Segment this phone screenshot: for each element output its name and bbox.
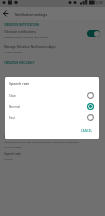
staticText: Slow (9, 94, 16, 98)
button[interactable]: Vibration notifications toggle (87, 30, 100, 37)
staticText: Vibration notifications (4, 30, 36, 34)
staticText: Speech rate (9, 81, 30, 86)
staticText: Normal (9, 105, 20, 109)
staticText: Conditional Voice Notifications (4, 135, 49, 139)
button[interactable]: Fast (5, 112, 99, 123)
staticText: Speech rate (4, 152, 22, 156)
button[interactable]: CANCEL (74, 127, 99, 135)
button[interactable]: Back (0, 8, 11, 19)
button[interactable]: Speech rate (0, 152, 105, 160)
button[interactable]: Slow (5, 90, 99, 101)
staticText: Manage Vibration Notification Apps (4, 45, 56, 49)
staticText: 12:08 (94, 0, 103, 5)
staticText: Configure haptic vibration alert setting… (4, 35, 49, 38)
staticText: Normal (4, 157, 13, 160)
staticText: Notification settings (15, 12, 48, 16)
staticText: VIBRATION FREQUENCY (4, 61, 35, 65)
staticText: VIBRATION NOTIFICATIONS (4, 23, 40, 27)
button[interactable]: Normal (5, 101, 99, 112)
button[interactable]: Vibration notifications (0, 30, 105, 38)
button[interactable]: Manage Vibration Notification Apps (0, 45, 105, 53)
staticText: Choose whether to hear out notifications… (4, 140, 80, 148)
staticText: 3 Apps Selected (4, 50, 22, 53)
staticText: Fast (9, 116, 15, 120)
button[interactable]: Conditional Voice Notifications (0, 135, 105, 148)
staticText: CANCEL (81, 129, 92, 133)
